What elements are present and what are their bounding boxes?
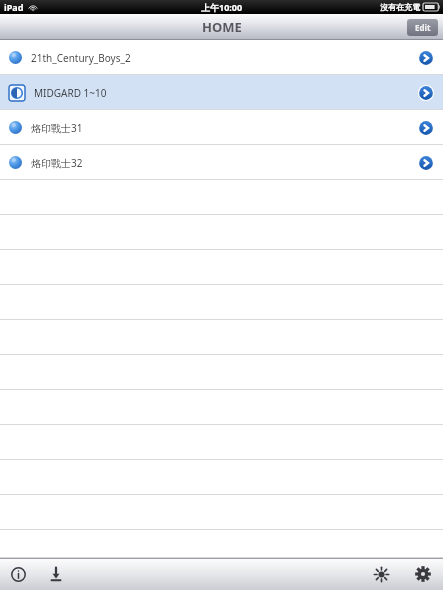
- staticText: HOME: [202, 18, 242, 36]
- button[interactable]: Edit: [407, 19, 438, 36]
- button[interactable]: 21th_Century_Boys_2: [0, 40, 443, 75]
- button[interactable]: Info: [6, 562, 30, 586]
- staticText: 上午10:00: [201, 1, 243, 13]
- button[interactable]: 烙印戰士31: [0, 110, 443, 145]
- staticText: 烙印戰士32: [31, 156, 83, 170]
- staticText: MIDGARD 1~10: [34, 86, 107, 100]
- staticText: Edit: [415, 22, 431, 33]
- button[interactable]: 烙印戰士32: [0, 145, 443, 180]
- button[interactable]: MIDGARD 1~10: [0, 75, 443, 110]
- staticText: 21th_Century_Boys_2: [31, 51, 131, 65]
- button[interactable]: Brightness: [369, 562, 393, 586]
- button[interactable]: Settings: [411, 562, 435, 586]
- staticText: 沒有在充電: [380, 2, 420, 12]
- staticText: iPad: [4, 1, 24, 13]
- other: Open 烙印戰士32: [418, 155, 434, 171]
- staticText: 烙印戰士31: [31, 121, 83, 135]
- other: Open MIDGARD 1~10: [418, 85, 434, 101]
- button[interactable]: Download: [44, 562, 68, 586]
- other: Open 烙印戰士31: [418, 120, 434, 136]
- other: Open 21th_Century_Boys_2: [418, 50, 434, 66]
